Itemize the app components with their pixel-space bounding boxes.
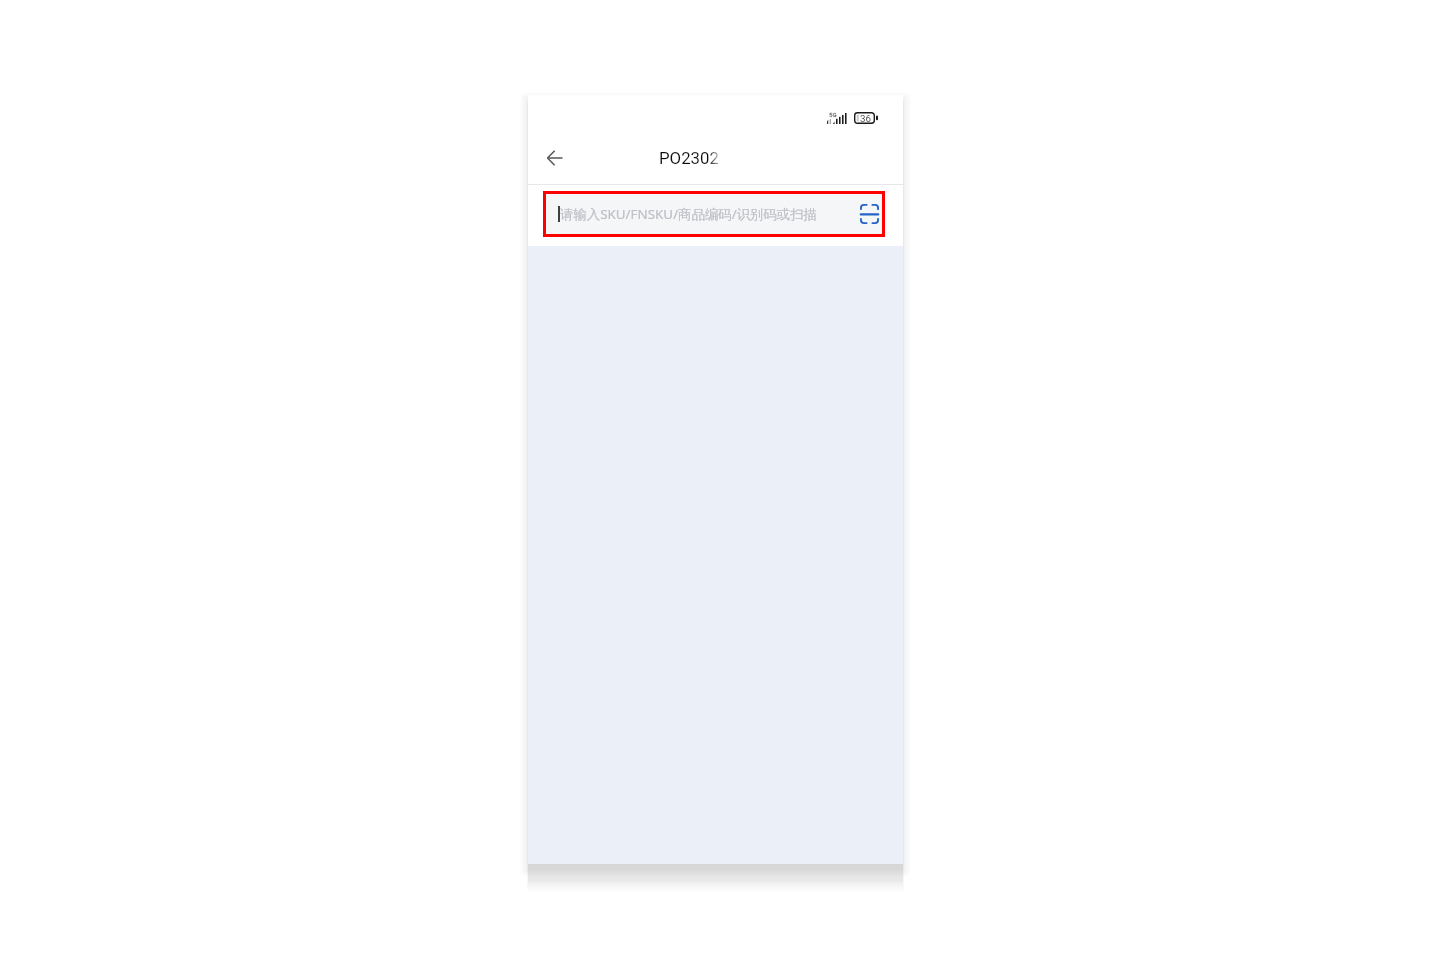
staticText: 请输入SKU/FNSKU/商品编码/识别码或扫描: [560, 205, 818, 223]
staticText: PO2302: [659, 148, 719, 168]
button[interactable]: Back: [533, 136, 577, 180]
staticText: 5G: [829, 111, 837, 118]
staticText: 36: [860, 113, 872, 124]
button[interactable]: Scan barcode: [857, 202, 881, 226]
button[interactable]: 请输入SKU/FNSKU/商品编码/识别码或扫描: [545, 193, 883, 235]
